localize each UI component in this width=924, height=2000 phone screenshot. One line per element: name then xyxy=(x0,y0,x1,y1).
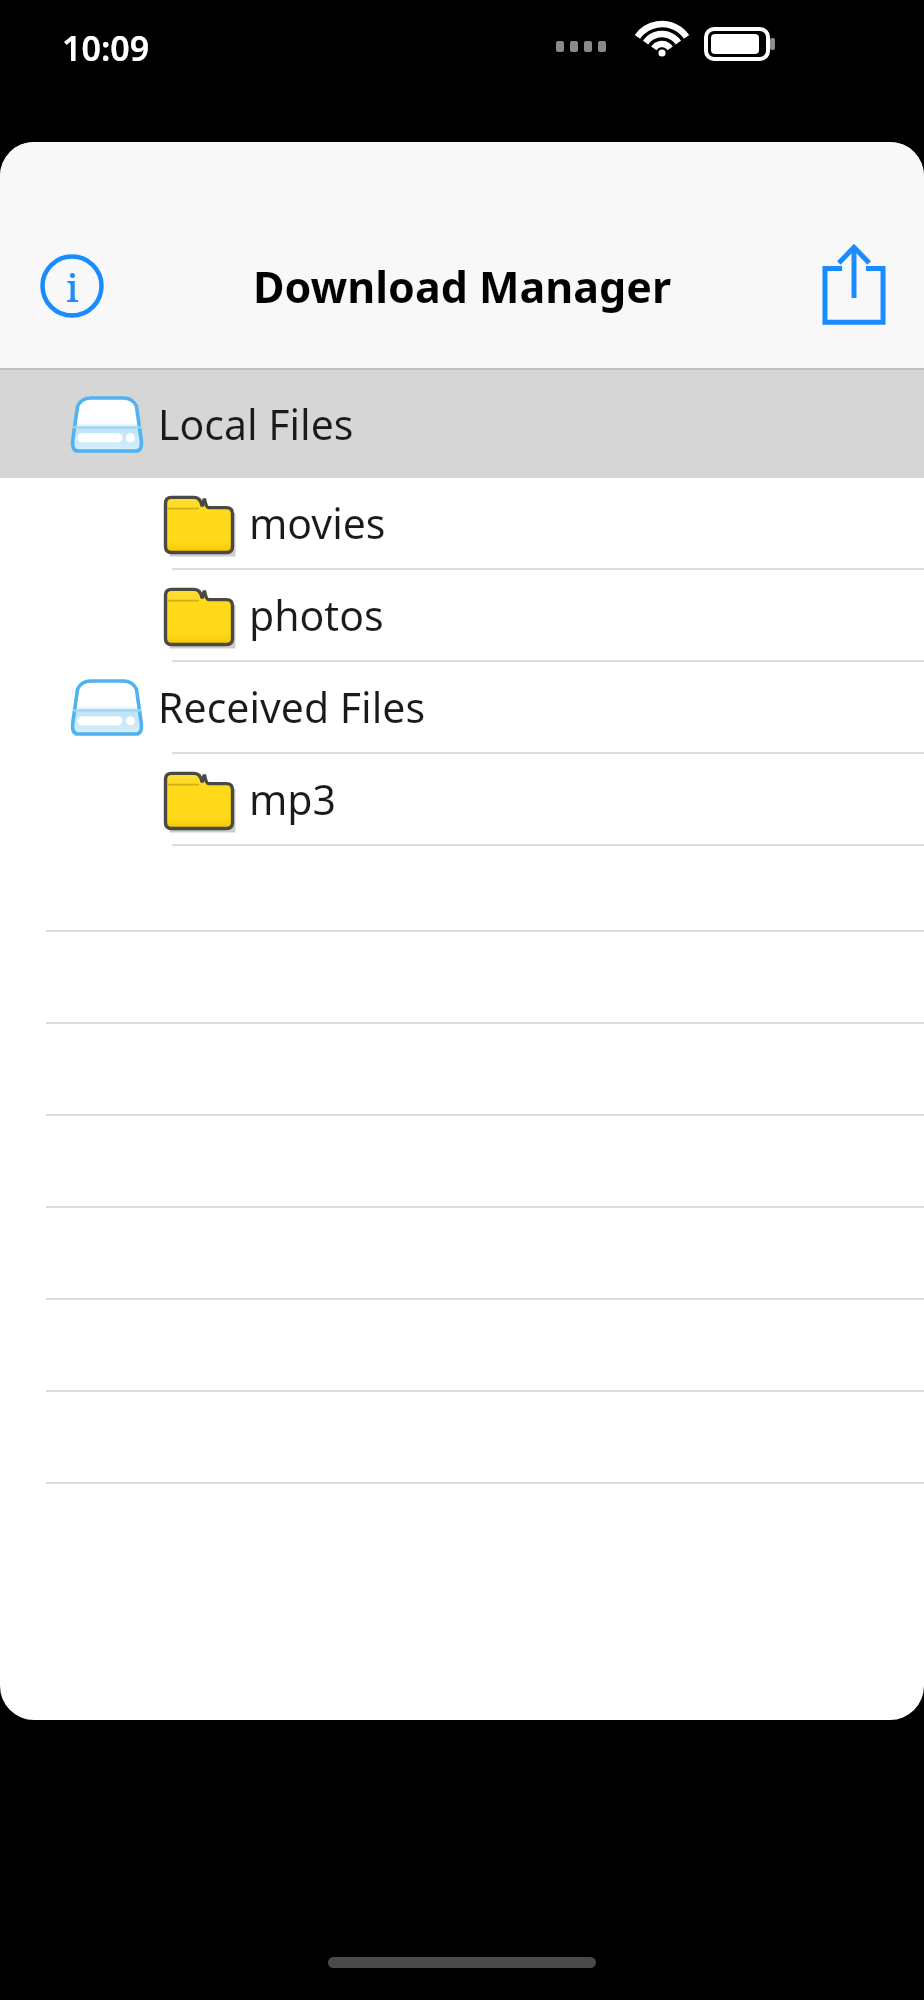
button[interactable]: Info xyxy=(26,240,118,332)
staticText: movies xyxy=(249,495,386,551)
staticText: i xyxy=(66,261,79,313)
button[interactable]: mp3 xyxy=(0,754,924,844)
staticText: Local Files xyxy=(158,396,354,452)
staticText: 10:09 xyxy=(62,25,150,71)
button[interactable]: Local Files xyxy=(0,370,924,478)
button[interactable]: movies xyxy=(0,478,924,568)
staticText: Download Manager xyxy=(253,257,672,316)
staticText: Received Files xyxy=(158,679,426,735)
staticText: photos xyxy=(249,587,384,643)
button[interactable]: Share xyxy=(806,236,902,332)
button[interactable]: photos xyxy=(0,570,924,660)
staticText: mp3 xyxy=(249,771,337,827)
button[interactable]: Received Files xyxy=(0,662,924,752)
